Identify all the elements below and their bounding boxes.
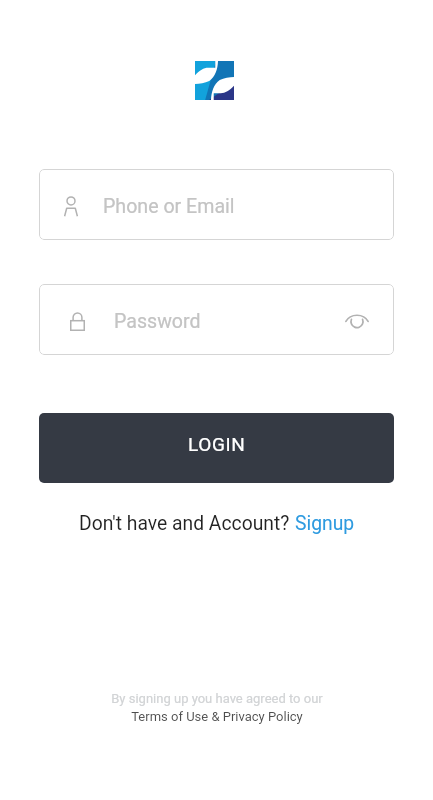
staticText: LOGIN <box>188 433 246 455</box>
staticText: Don't have and Account? <box>79 512 295 535</box>
button[interactable]: Terms of Use & Privacy Policy <box>131 709 303 724</box>
staticText: Phone or Email <box>103 195 235 218</box>
button[interactable]: Show password <box>342 305 372 335</box>
staticText: Terms of Use & Privacy Policy <box>131 709 303 724</box>
staticText: By signing up you have agreed to our <box>111 691 323 706</box>
button[interactable]: LOGIN <box>39 413 394 483</box>
staticText: Signup <box>295 512 355 535</box>
button[interactable]: Phone or Email <box>39 169 394 240</box>
button[interactable]: Password <box>39 284 394 355</box>
button[interactable]: Signup <box>295 512 355 535</box>
staticText: Password <box>114 310 201 333</box>
